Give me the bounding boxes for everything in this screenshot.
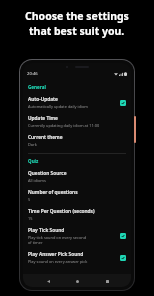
- staticText: Quiz: [28, 158, 39, 164]
- staticText: General: [28, 84, 46, 90]
- staticText: Play Tick Sound: [28, 227, 65, 234]
- staticText: Number of questions: [28, 189, 78, 196]
- staticText: Play tick sound on every second of timer: [28, 235, 87, 245]
- staticText: Automatically update daily idiom: [28, 104, 117, 109]
- staticText: Question Source: [28, 170, 67, 177]
- staticText: Time Per Question (seconds): [28, 208, 95, 215]
- staticText: 15: [28, 216, 120, 221]
- button[interactable]: Home: [72, 276, 82, 286]
- button[interactable]: Back: [43, 276, 53, 286]
- button[interactable]: Play Answer Pick Sound toggle: [120, 255, 126, 261]
- staticText: 5: [28, 197, 120, 202]
- staticText: Play sound on every answer pick: [28, 259, 117, 264]
- button[interactable]: Auto-Update: [28, 93, 126, 112]
- button[interactable]: Number of questions: [28, 186, 126, 205]
- button[interactable]: Play Tick Sound: [28, 224, 126, 248]
- button[interactable]: Current theme: [28, 131, 126, 150]
- button[interactable]: Question Source: [28, 167, 126, 186]
- staticText: Choose the settings: [25, 9, 129, 23]
- button[interactable]: Play Tick Sound toggle: [120, 233, 126, 239]
- staticText: All idioms: [28, 178, 120, 183]
- staticText: Dark: [28, 142, 120, 147]
- button[interactable]: Update Time: [28, 112, 126, 131]
- button[interactable]: Play Answer Pick Sound: [28, 248, 126, 267]
- staticText: Auto-Update: [28, 96, 58, 103]
- button[interactable]: Recents: [102, 276, 112, 286]
- staticText: Currently updating daily idiom at 11:00: [28, 123, 120, 128]
- staticText: Current theme: [28, 134, 63, 141]
- button[interactable]: Time Per Question (seconds): [28, 205, 126, 224]
- staticText: 20:46: [27, 71, 38, 77]
- staticText: that best suit you.: [29, 24, 125, 38]
- button[interactable]: Auto-Update toggle: [120, 100, 126, 106]
- staticText: Update Time: [28, 115, 58, 122]
- staticText: Play Answer Pick Sound: [28, 251, 84, 258]
